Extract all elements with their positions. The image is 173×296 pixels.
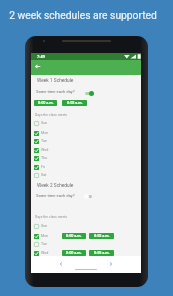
button[interactable]: Wed	[34, 146, 74, 154]
staticText: Sat	[41, 173, 47, 177]
button[interactable]: Mon	[34, 129, 74, 137]
staticText: Wed	[41, 251, 49, 255]
staticText: Week 1 Schedule	[37, 78, 74, 84]
button[interactable]: Same time each day toggle	[82, 191, 96, 201]
staticText: 7:49	[37, 54, 46, 59]
button[interactable]: Sun	[34, 119, 74, 127]
button[interactable]: Thu	[34, 154, 74, 162]
button[interactable]: Tue	[34, 240, 74, 248]
staticText: 8:00 a.m.	[66, 251, 82, 255]
staticText: Week 2 Schedule	[37, 183, 74, 189]
staticText: Days the class meets	[35, 215, 68, 219]
staticText: Same time each day?	[36, 193, 75, 198]
staticText: Sun	[41, 121, 48, 125]
staticText: 8:00 a.m.	[38, 101, 54, 105]
button[interactable]: Previous	[55, 258, 67, 270]
staticText: Wed	[41, 148, 49, 152]
staticText: 8:55 a.m.	[94, 234, 110, 238]
staticText: Fri	[41, 165, 46, 169]
button[interactable]: Fri	[34, 163, 74, 171]
staticText: Tue	[41, 139, 48, 143]
button[interactable]: Tue	[34, 137, 74, 145]
staticText: Thu	[41, 156, 48, 160]
staticText: Tue	[41, 242, 48, 246]
staticText: 8:55 a.m.	[67, 101, 83, 105]
button[interactable]: 8:00 a.m.	[62, 233, 86, 239]
button[interactable]: Same time each day toggle	[82, 88, 96, 98]
staticText: 8:00 a.m.	[66, 234, 82, 238]
staticText: 2 week schedules are supported	[0, 9, 166, 21]
staticText: Mon	[41, 234, 49, 238]
button[interactable]: Sat	[34, 171, 74, 179]
staticText: Mon	[41, 131, 49, 135]
button[interactable]: Wed	[34, 249, 74, 257]
staticText: 8:55 a.m.	[94, 251, 110, 255]
button[interactable]: Sun	[34, 222, 74, 230]
button[interactable]: Next	[105, 258, 117, 270]
staticText: Sun	[41, 224, 48, 228]
staticText: Same time each day?	[36, 89, 75, 94]
button[interactable]: Mon	[34, 232, 74, 240]
button[interactable]: 8:55 a.m.	[62, 100, 87, 106]
button[interactable]: Back	[31, 60, 44, 73]
button[interactable]: 8:55 a.m.	[89, 250, 114, 256]
staticText: Days the class meets	[35, 113, 68, 117]
button[interactable]: 8:00 a.m.	[62, 250, 86, 256]
button[interactable]: 8:00 a.m.	[34, 100, 57, 106]
button[interactable]: 8:55 a.m.	[89, 233, 114, 239]
